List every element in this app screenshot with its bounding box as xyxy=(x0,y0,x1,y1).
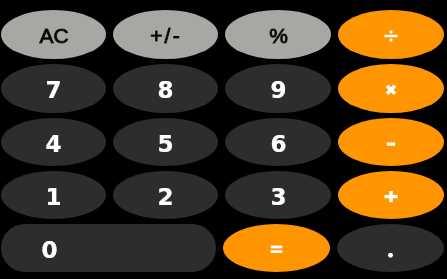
staticText: 6 xyxy=(270,131,287,158)
staticText: 0 xyxy=(41,237,58,264)
staticText: +/- xyxy=(150,24,182,47)
staticText: 5 xyxy=(157,131,174,158)
staticText: 1 xyxy=(45,184,62,211)
button[interactable]: 5 xyxy=(113,118,218,166)
button[interactable]: 6 xyxy=(225,118,331,166)
button[interactable]: Add xyxy=(338,171,444,219)
button[interactable]: Multiply xyxy=(338,64,444,113)
staticText: 8 xyxy=(157,77,174,104)
staticText: 4 xyxy=(45,131,62,158)
button[interactable]: Equals xyxy=(223,224,330,272)
button[interactable]: Decimal point xyxy=(337,224,444,272)
button[interactable]: Percent xyxy=(225,10,331,59)
button[interactable]: Subtract xyxy=(338,118,444,166)
button[interactable]: Plus minus xyxy=(113,10,218,59)
staticText: % xyxy=(269,24,288,47)
staticText: 3 xyxy=(270,184,287,211)
staticText: +/- xyxy=(150,24,182,47)
button[interactable]: Divide xyxy=(338,10,444,59)
button[interactable]: 4 xyxy=(1,118,106,166)
staticText: 7 xyxy=(45,77,62,104)
button[interactable]: 2 xyxy=(113,171,218,219)
button[interactable]: 8 xyxy=(113,64,218,113)
button[interactable]: 3 xyxy=(225,171,331,219)
staticText: 9 xyxy=(270,77,287,104)
button[interactable]: 7 xyxy=(1,64,106,113)
button[interactable]: 1 xyxy=(1,171,106,219)
button[interactable]: 0 xyxy=(1,224,216,272)
staticText: % xyxy=(269,24,288,47)
staticText: AC xyxy=(39,24,69,47)
staticText: 2 xyxy=(157,184,174,211)
button[interactable]: 9 xyxy=(225,64,331,113)
button[interactable]: All clear xyxy=(1,10,106,59)
staticText: AC xyxy=(39,24,69,47)
